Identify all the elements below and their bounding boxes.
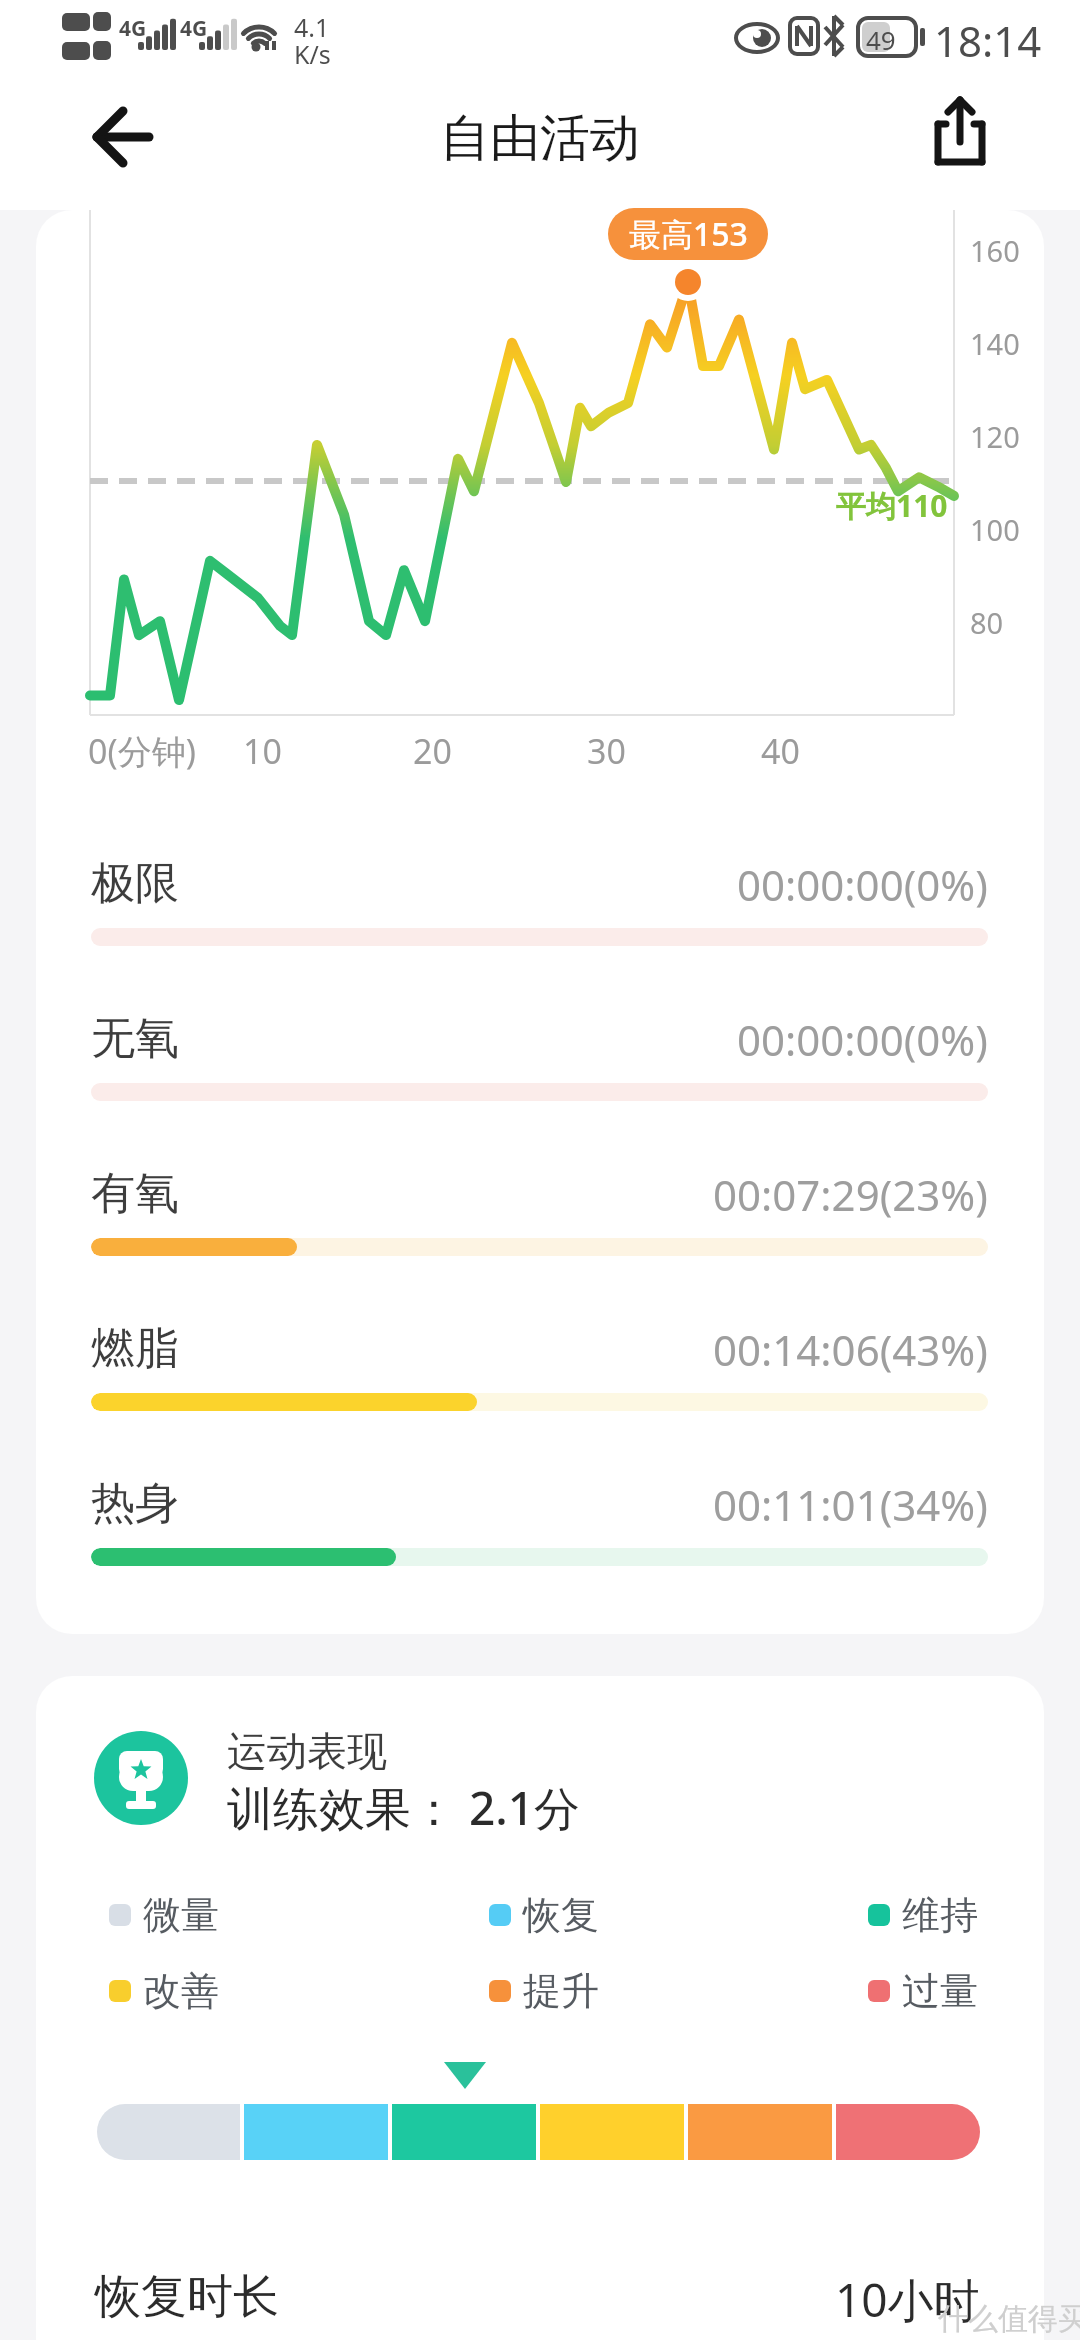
staticText: 30: [587, 728, 626, 774]
button[interactable]: 无氧: [91, 1011, 988, 1068]
staticText: 10: [243, 728, 282, 774]
button[interactable]: [920, 90, 1000, 180]
staticText: 00:14:06(43%): [713, 1321, 988, 1378]
staticText: 恢复: [523, 1891, 599, 1939]
staticText: 4.1 K/s: [294, 10, 331, 72]
staticText: 训练效果： 2.1分: [227, 1776, 581, 1839]
staticText: 120: [970, 417, 1020, 456]
staticText: 20: [413, 728, 452, 774]
button[interactable]: 有氧: [91, 1166, 988, 1223]
staticText: 160: [970, 231, 1020, 270]
staticText: 提升: [523, 1967, 599, 2015]
staticText: 什么值得买: [938, 2300, 1080, 2338]
staticText: 0(分钟): [88, 728, 196, 774]
button[interactable]: 极限: [91, 856, 988, 913]
staticText: 平均110: [836, 485, 948, 526]
staticText: 100: [970, 510, 1020, 549]
staticText: 4G: [119, 14, 147, 43]
staticText: 140: [970, 324, 1020, 363]
staticText: 40: [761, 728, 800, 774]
staticText: 10小时: [835, 2268, 980, 2331]
staticText: 微量: [143, 1891, 219, 1939]
button[interactable]: 燃脂: [91, 1321, 988, 1378]
staticText: 最高153: [629, 212, 748, 256]
button[interactable]: 提升: [489, 1967, 599, 2015]
button[interactable]: 微量: [109, 1891, 219, 1939]
button[interactable]: 维持: [868, 1891, 978, 1939]
staticText: 80: [970, 603, 1004, 642]
staticText: 无氧: [91, 1011, 179, 1066]
staticText: 恢复时长: [95, 2268, 279, 2326]
staticText: 00:07:29(23%): [713, 1166, 988, 1223]
staticText: 维持: [902, 1891, 978, 1939]
button[interactable]: 热身: [91, 1476, 988, 1533]
staticText: 极限: [91, 856, 179, 911]
staticText: 00:00:00(0%): [737, 1011, 988, 1068]
button[interactable]: 过量: [868, 1967, 978, 2015]
staticText: 00:11:01(34%): [713, 1476, 988, 1533]
staticText: 4G: [180, 14, 208, 43]
staticText: 有氧: [91, 1166, 179, 1221]
staticText: 49: [866, 22, 896, 57]
staticText: 运动表现: [227, 1726, 387, 1776]
staticText: 过量: [902, 1967, 978, 2015]
button[interactable]: [80, 102, 168, 172]
staticText: 18:14: [934, 12, 1042, 69]
staticText: 00:00:00(0%): [737, 856, 988, 913]
staticText: 自由活动: [440, 107, 640, 170]
staticText: 改善: [143, 1967, 219, 2015]
staticText: 热身: [91, 1476, 179, 1531]
staticText: 燃脂: [91, 1321, 179, 1376]
button[interactable]: 改善: [109, 1967, 219, 2015]
button[interactable]: 恢复: [489, 1891, 599, 1939]
